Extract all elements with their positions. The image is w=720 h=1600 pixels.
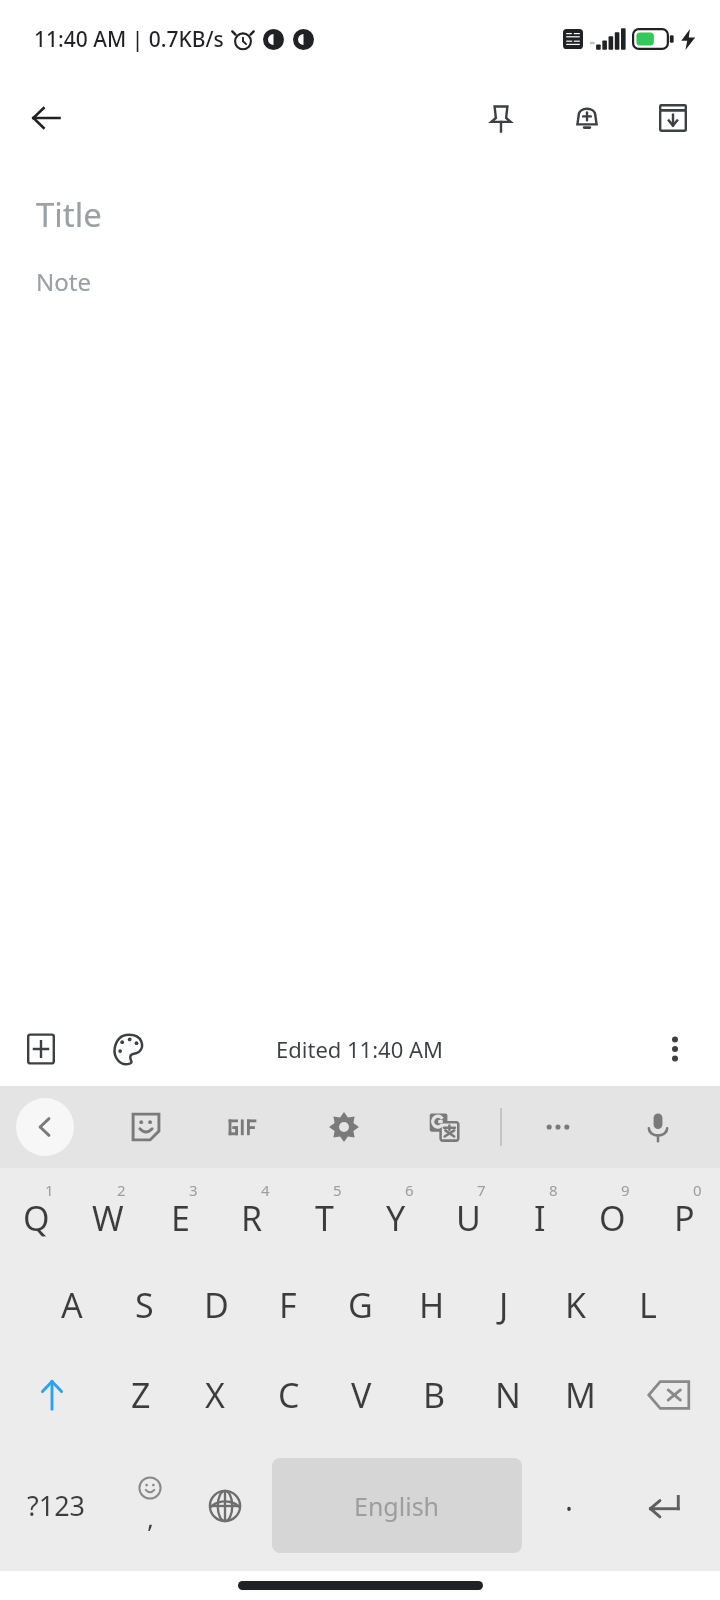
- button[interactable]: 3: [144, 1168, 216, 1260]
- button[interactable]: Stickers: [96, 1086, 195, 1168]
- staticText: B: [423, 1372, 446, 1418]
- button[interactable]: 9: [576, 1168, 648, 1260]
- staticText: C: [278, 1372, 300, 1418]
- staticText: V: [351, 1372, 372, 1418]
- staticText: P: [674, 1195, 695, 1241]
- staticText: 8: [549, 1180, 558, 1200]
- staticText: Edited 11:40 AM: [276, 1034, 444, 1064]
- staticText: K: [565, 1282, 587, 1328]
- staticText: M: [565, 1372, 596, 1418]
- button[interactable]: Title: [36, 192, 720, 237]
- staticText: Q: [23, 1195, 50, 1241]
- button[interactable]: C: [252, 1350, 325, 1440]
- staticText: 1: [45, 1180, 54, 1200]
- staticText: Z: [131, 1372, 151, 1418]
- button[interactable]: GIF: [195, 1086, 294, 1168]
- button[interactable]: K: [540, 1260, 612, 1350]
- staticText: A: [61, 1282, 83, 1328]
- staticText: 9: [621, 1180, 630, 1200]
- staticText: I: [534, 1195, 546, 1241]
- staticText: H: [419, 1282, 445, 1328]
- button[interactable]: 2: [72, 1168, 144, 1260]
- staticText: L: [639, 1282, 657, 1328]
- button[interactable]: J: [468, 1260, 540, 1350]
- button[interactable]: Note: [36, 265, 720, 298]
- staticText: G: [348, 1282, 373, 1328]
- button[interactable]: S: [108, 1260, 180, 1350]
- staticText: R: [241, 1195, 263, 1241]
- button[interactable]: Archive: [642, 87, 704, 149]
- staticText: 4: [261, 1180, 270, 1200]
- staticText: Title: [36, 192, 102, 237]
- staticText: 0: [693, 1180, 702, 1200]
- button[interactable]: Back: [14, 86, 78, 150]
- button[interactable]: .: [532, 1440, 607, 1571]
- staticText: E: [171, 1195, 190, 1241]
- staticText: ,: [147, 1500, 154, 1535]
- staticText: U: [456, 1195, 481, 1241]
- button[interactable]: H: [396, 1260, 468, 1350]
- staticText: N: [495, 1372, 521, 1418]
- button[interactable]: D: [180, 1260, 252, 1350]
- button[interactable]: Translate: [394, 1086, 494, 1168]
- button[interactable]: Reminder: [556, 87, 618, 149]
- staticText: 5: [333, 1180, 342, 1200]
- button[interactable]: Pin note: [470, 87, 532, 149]
- staticText: 2: [117, 1180, 126, 1200]
- button[interactable]: Keyboard settings: [294, 1086, 394, 1168]
- button[interactable]: 1: [0, 1168, 72, 1260]
- button[interactable]: N: [471, 1350, 544, 1440]
- button[interactable]: Shift: [0, 1350, 104, 1440]
- staticText: 11:40 AM | 0.7KB/s: [34, 25, 224, 54]
- staticText: S: [135, 1282, 154, 1328]
- staticText: 3: [189, 1180, 198, 1200]
- staticText: F: [279, 1282, 297, 1328]
- button[interactable]: B: [398, 1350, 471, 1440]
- staticText: Note: [36, 265, 91, 298]
- staticText: English: [354, 1489, 440, 1523]
- staticText: O: [599, 1195, 626, 1241]
- button[interactable]: G: [324, 1260, 396, 1350]
- button[interactable]: X: [178, 1350, 252, 1440]
- button[interactable]: Close toolbar: [16, 1098, 74, 1156]
- button[interactable]: 6: [360, 1168, 432, 1260]
- staticText: ?123: [27, 1487, 86, 1524]
- button[interactable]: 0: [648, 1168, 720, 1260]
- staticText: Y: [386, 1195, 406, 1241]
- button[interactable]: 7: [432, 1168, 504, 1260]
- staticText: 6: [405, 1180, 414, 1200]
- button[interactable]: 4: [216, 1168, 288, 1260]
- button[interactable]: Enter: [607, 1440, 720, 1571]
- button[interactable]: ?123: [0, 1440, 112, 1571]
- button[interactable]: A: [36, 1260, 108, 1350]
- button[interactable]: Backspace: [617, 1350, 720, 1440]
- button[interactable]: More: [508, 1086, 608, 1168]
- button[interactable]: 5: [288, 1168, 360, 1260]
- button[interactable]: L: [612, 1260, 684, 1350]
- button[interactable]: Voice input: [608, 1086, 708, 1168]
- button[interactable]: Colour palette: [98, 1018, 160, 1080]
- staticText: J: [499, 1282, 509, 1328]
- button[interactable]: More options: [644, 1018, 706, 1080]
- button[interactable]: Z: [104, 1350, 178, 1440]
- staticText: D: [204, 1282, 229, 1328]
- button[interactable]: F: [252, 1260, 324, 1350]
- staticText: T: [315, 1195, 334, 1241]
- staticText: .: [565, 1479, 574, 1520]
- staticText: W: [92, 1195, 124, 1241]
- staticText: 7: [477, 1180, 486, 1200]
- button[interactable]: M: [544, 1350, 617, 1440]
- button[interactable]: V: [325, 1350, 398, 1440]
- button[interactable]: 8: [504, 1168, 576, 1260]
- button[interactable]: Emoji and comma: [112, 1440, 187, 1571]
- button[interactable]: Change language: [187, 1440, 262, 1571]
- button[interactable]: Add: [10, 1018, 72, 1080]
- button[interactable]: English: [272, 1458, 522, 1553]
- staticText: X: [205, 1372, 225, 1418]
